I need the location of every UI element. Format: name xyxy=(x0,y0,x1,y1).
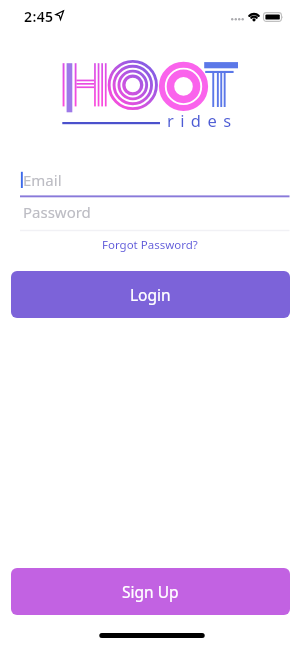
button[interactable]: Login xyxy=(11,271,290,318)
button[interactable]: Email xyxy=(20,168,290,198)
staticText: Email xyxy=(23,170,62,190)
button[interactable]: Forgot Password? xyxy=(102,237,198,253)
button[interactable]: Password xyxy=(20,200,290,231)
button[interactable]: Sign Up xyxy=(11,568,290,615)
staticText: rides xyxy=(167,109,238,131)
staticText: 2:45 xyxy=(24,7,54,26)
staticText: Sign Up xyxy=(122,581,179,602)
staticText: Login xyxy=(130,284,171,305)
staticText: Password xyxy=(23,202,91,222)
